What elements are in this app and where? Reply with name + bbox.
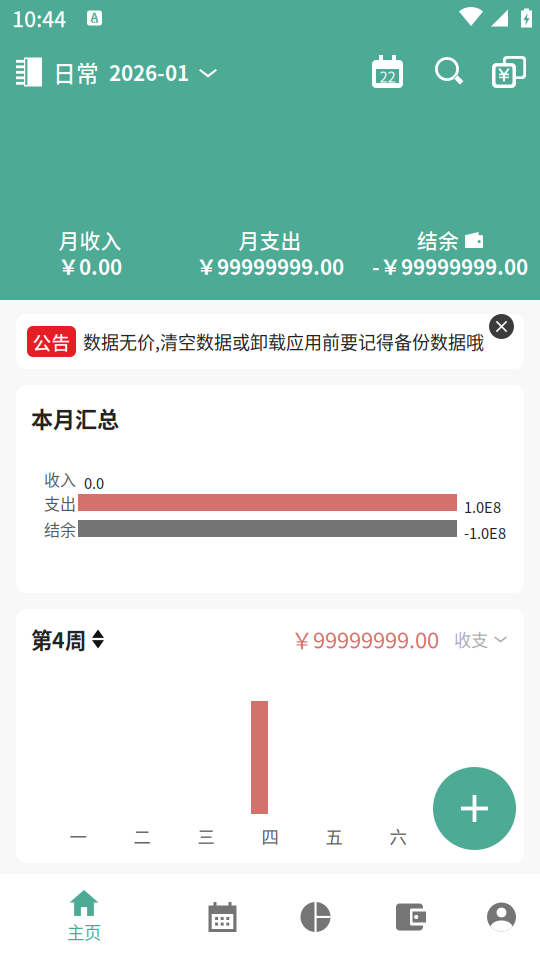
staticText: 月支出: [238, 225, 301, 255]
staticText: 六: [389, 823, 406, 849]
button[interactable]: 主页: [0, 874, 168, 960]
staticText: -1.0E8: [464, 522, 506, 543]
staticText: 支出: [44, 491, 76, 515]
button[interactable]: Search: [434, 56, 466, 88]
staticText: ￥0.00: [58, 251, 122, 281]
staticText: ￥99999999.00: [291, 623, 439, 655]
button[interactable]: Statistics: [269, 874, 362, 960]
staticText: A: [90, 8, 98, 25]
button[interactable]: 收支: [453, 626, 508, 652]
staticText: 二: [133, 823, 150, 849]
button[interactable]: Calendar: [372, 55, 403, 88]
staticText: 22: [379, 65, 395, 87]
staticText: 日常: [53, 56, 99, 88]
staticText: 五: [325, 823, 342, 849]
staticText: 一: [69, 823, 86, 849]
staticText: 第4周: [31, 624, 86, 654]
button[interactable]: Profile: [455, 874, 540, 960]
button[interactable]: Add record: [433, 767, 516, 850]
button[interactable]: Assets: [363, 874, 456, 960]
staticText: 主页: [67, 919, 101, 944]
button[interactable]: 第4周: [31, 626, 121, 652]
staticText: 结余: [44, 517, 76, 541]
staticText: 月收入: [58, 225, 121, 255]
staticText: 1.0E8: [464, 496, 501, 517]
button[interactable]: Ledgers: [492, 56, 526, 88]
staticText: 数据无价,清空数据或卸载应用前要记得备份数据哦: [83, 328, 484, 355]
staticText: 2026-01: [109, 57, 189, 87]
button[interactable]: Calendar: [176, 874, 269, 960]
staticText: 四: [261, 823, 278, 849]
staticText: -￥99999999.00: [372, 251, 528, 281]
staticText: 0.0: [84, 472, 104, 493]
staticText: 本月汇总: [31, 402, 119, 434]
staticText: 10:44: [12, 3, 66, 33]
staticText: 公告: [32, 328, 70, 355]
button[interactable]: 日常: [16, 53, 256, 91]
staticText: 三: [197, 823, 214, 849]
staticText: 收入: [44, 467, 76, 491]
staticText: 收支: [454, 626, 488, 652]
staticText: 日: [453, 823, 470, 849]
staticText: ￥99999999.00: [196, 251, 344, 281]
staticText: 结余: [417, 225, 459, 255]
button[interactable]: Dismiss announcement: [489, 314, 514, 339]
